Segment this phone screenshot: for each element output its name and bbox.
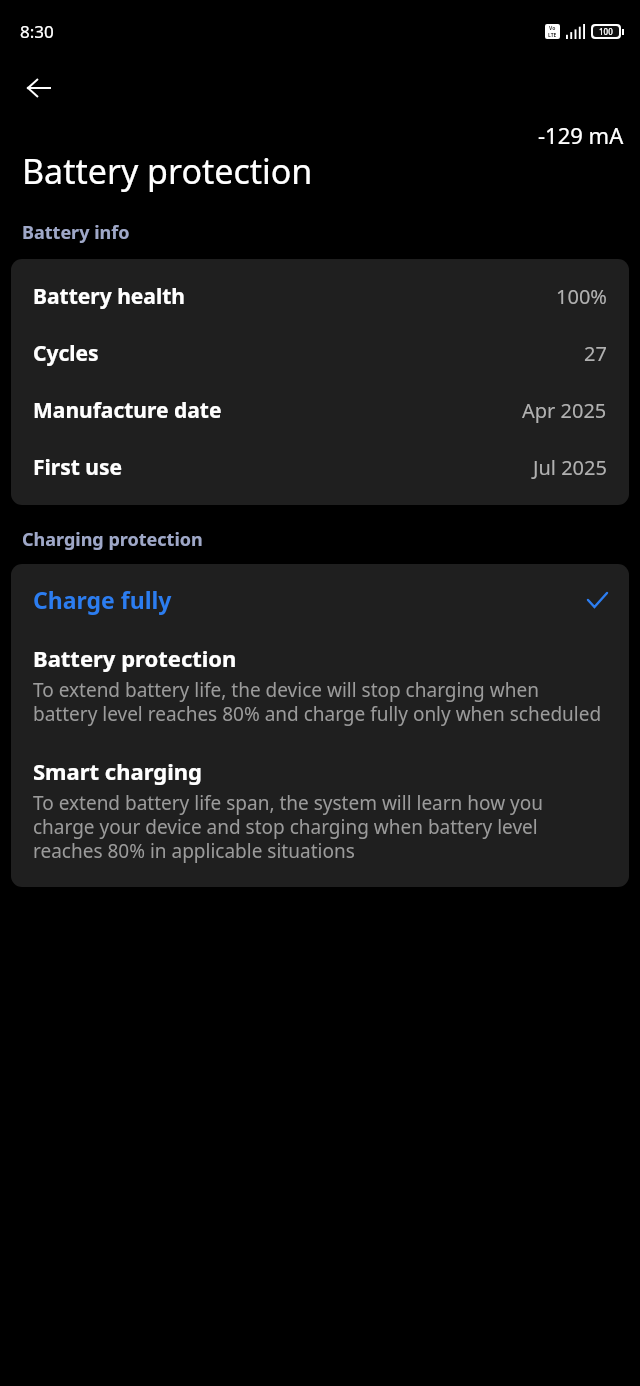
other: Selected <box>588 593 607 607</box>
staticText: Battery info <box>22 220 130 245</box>
staticText: Apr 2025 <box>522 397 607 424</box>
staticText: 8:30 <box>20 20 54 43</box>
staticText: Charge fully <box>33 584 172 615</box>
staticText: Battery protection <box>22 148 313 194</box>
staticText: Battery protection <box>33 643 237 673</box>
staticText: Charging protection <box>22 527 203 552</box>
button[interactable]: Smart charging <box>11 756 629 887</box>
staticText: 100 <box>599 26 613 37</box>
staticText: 100% <box>556 283 607 310</box>
staticText: Smart charging <box>33 756 202 786</box>
staticText: LTE <box>548 32 557 39</box>
button[interactable]: First use <box>11 439 629 496</box>
button[interactable]: Back <box>0 62 78 114</box>
staticText: To extend battery life span, the system … <box>33 790 607 863</box>
staticText: Jul 2025 <box>533 454 607 481</box>
staticText: Vo <box>549 25 556 32</box>
button[interactable]: Battery health <box>11 268 629 325</box>
staticText: Cycles <box>33 339 99 368</box>
staticText: Manufacture date <box>33 396 222 425</box>
staticText: Battery health <box>33 282 185 311</box>
staticText: First use <box>33 453 123 482</box>
button[interactable]: Manufacture date <box>11 382 629 439</box>
button[interactable]: Charge fully <box>11 564 629 629</box>
staticText: -129 mA <box>538 120 624 150</box>
button[interactable]: Cycles <box>11 325 629 382</box>
button[interactable]: Battery protection <box>11 629 629 734</box>
staticText: 27 <box>584 340 607 367</box>
staticText: To extend battery life, the device will … <box>33 677 607 726</box>
